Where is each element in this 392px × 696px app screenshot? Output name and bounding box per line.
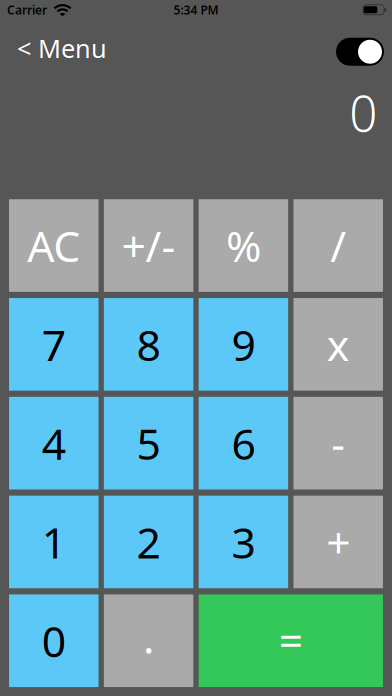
staticText: < Menu bbox=[17, 31, 107, 65]
staticText: 1 bbox=[42, 514, 66, 570]
staticText: 2 bbox=[137, 514, 161, 570]
staticText: = bbox=[279, 611, 303, 668]
button[interactable]: 8 bbox=[104, 298, 193, 391]
button[interactable]: - bbox=[293, 397, 383, 489]
button[interactable]: 4 bbox=[9, 397, 99, 489]
staticText: . bbox=[143, 609, 154, 666]
staticText: +/- bbox=[122, 217, 176, 274]
button[interactable]: / bbox=[293, 199, 383, 292]
button[interactable]: = bbox=[199, 594, 383, 687]
button[interactable]: . bbox=[104, 594, 193, 687]
staticText: 4 bbox=[42, 415, 66, 471]
button[interactable]: x bbox=[293, 298, 383, 391]
staticText: - bbox=[331, 415, 345, 471]
staticText: / bbox=[330, 217, 346, 274]
button[interactable]: AC bbox=[9, 199, 99, 292]
staticText: AC bbox=[27, 217, 80, 274]
staticText: + bbox=[326, 514, 350, 570]
button[interactable]: 0 bbox=[9, 594, 98, 687]
staticText: Carrier bbox=[7, 2, 47, 18]
staticText: 5 bbox=[137, 415, 161, 471]
staticText: % bbox=[226, 217, 261, 274]
button[interactable]: < Menu bbox=[17, 35, 107, 68]
staticText: 5:34 PM bbox=[173, 2, 218, 18]
staticText: 6 bbox=[231, 415, 255, 471]
button[interactable]: 5 bbox=[104, 397, 193, 489]
staticText: 8 bbox=[137, 316, 161, 373]
staticText: 3 bbox=[231, 514, 255, 570]
button[interactable]: +/- bbox=[104, 199, 193, 292]
button[interactable]: 2 bbox=[104, 496, 193, 588]
button[interactable]: 9 bbox=[199, 298, 288, 391]
staticText: 9 bbox=[231, 316, 255, 373]
button[interactable]: % bbox=[199, 199, 288, 292]
staticText: x bbox=[327, 316, 350, 373]
button[interactable]: 7 bbox=[9, 298, 99, 391]
staticText: 0 bbox=[42, 612, 66, 669]
button[interactable]: + bbox=[293, 496, 383, 588]
staticText: 0 bbox=[349, 80, 377, 145]
button[interactable]: 6 bbox=[199, 397, 288, 489]
button[interactable]: 3 bbox=[199, 496, 288, 588]
button[interactable]: 1 bbox=[9, 496, 99, 588]
button[interactable]: Toggle bbox=[336, 38, 384, 66]
staticText: 7 bbox=[42, 316, 66, 373]
